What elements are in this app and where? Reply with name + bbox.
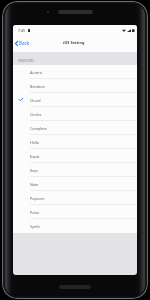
- staticText: Popcorn: [30, 196, 45, 201]
- staticText: Input: [30, 154, 40, 159]
- staticText: Synth: [30, 224, 40, 229]
- staticText: iOS Setting: [63, 40, 85, 45]
- button[interactable]: Back: [13, 37, 34, 49]
- staticText: Chord: [30, 98, 41, 103]
- button[interactable]: Circles: [13, 107, 137, 121]
- staticText: Complete: [30, 126, 47, 131]
- button[interactable]: Note: [13, 177, 137, 191]
- button[interactable]: Bamboo: [13, 79, 137, 93]
- staticText: Aurora: [30, 70, 42, 75]
- staticText: RINGTONES: [18, 59, 34, 63]
- button[interactable]: Hello: [13, 135, 137, 149]
- staticText: Note: [30, 182, 39, 187]
- staticText: 7:45: [18, 28, 25, 33]
- staticText: Bamboo: [30, 84, 45, 89]
- staticText: Back: [19, 40, 30, 46]
- button[interactable]: Synth: [13, 219, 137, 233]
- button[interactable]: Input: [13, 149, 137, 163]
- button[interactable]: Keys: [13, 163, 137, 177]
- button[interactable]: Aurora: [13, 65, 137, 79]
- button[interactable]: Chord: [13, 93, 137, 107]
- staticText: Circles: [30, 112, 42, 117]
- staticText: Keys: [30, 168, 38, 173]
- staticText: Hello: [30, 140, 39, 145]
- button[interactable]: Popcorn: [13, 191, 137, 205]
- button[interactable]: Complete: [13, 121, 137, 135]
- staticText: Pulse: [30, 210, 40, 215]
- button[interactable]: Pulse: [13, 205, 137, 219]
